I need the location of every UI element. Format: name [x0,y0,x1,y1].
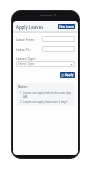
button[interactable]: Apply Leaves [16,24,44,30]
staticText: View Leaves [59,25,75,29]
staticText: Leaves Type : [16,56,37,60]
button[interactable]: Apply [60,72,75,78]
staticText: Apply [65,73,74,77]
staticText: AM. [23,95,28,99]
button[interactable]: Select Type [16,61,75,67]
staticText: Apply Leaves [16,24,44,30]
button[interactable]: View Leaves [58,24,75,29]
staticText: 1. [20,91,23,95]
staticText: Notes : [18,85,29,89]
staticText: Leaves can apply maximum 3 days/month. [23,100,73,104]
button[interactable] [42,36,75,42]
staticText: Leaves can apply before the same day til… [23,91,73,95]
staticText: Leave From : [16,37,36,41]
staticText: Select Type [18,62,35,66]
staticText: Leave To : [16,47,32,51]
staticText: 2. [20,100,23,104]
button[interactable] [42,46,75,52]
